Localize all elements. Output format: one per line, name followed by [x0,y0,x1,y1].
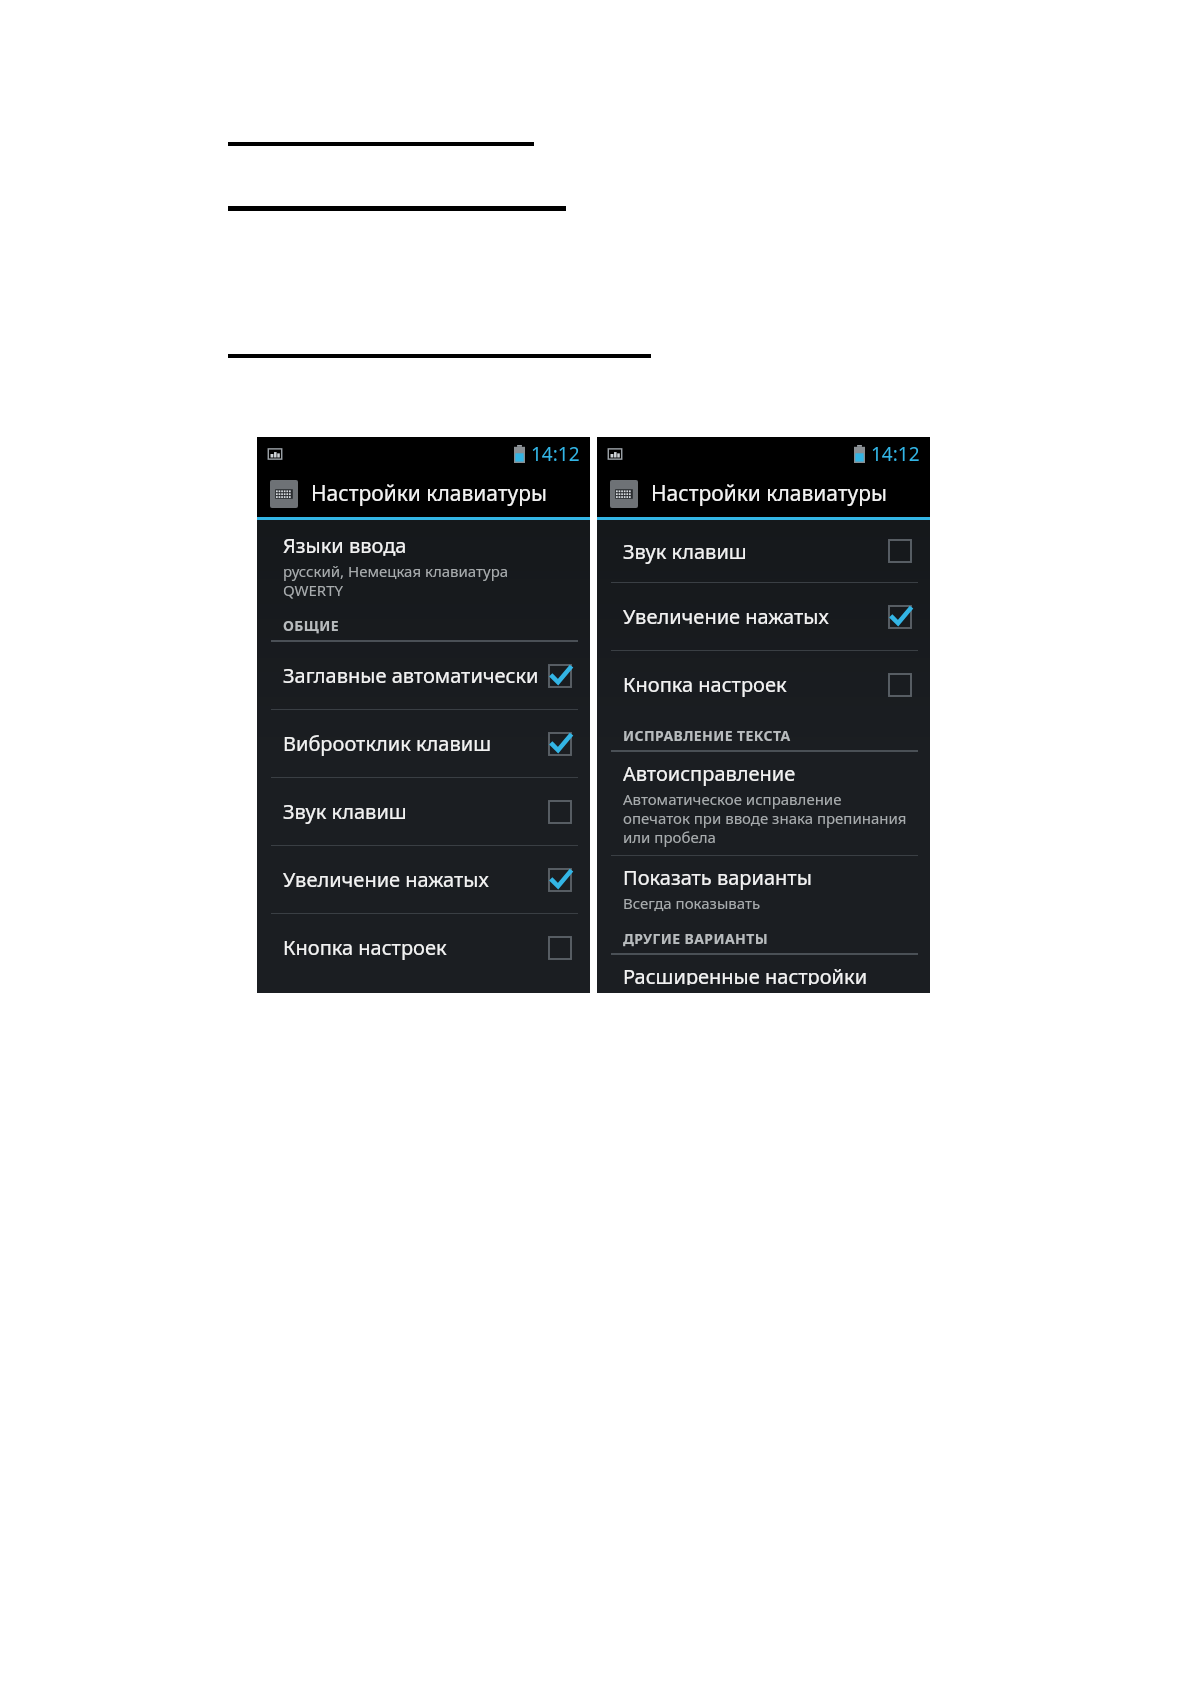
staticText: русский, Немецкая клавиатура QWERTY [283,561,509,600]
staticText: Языки ввода [283,532,407,559]
staticText: Расширенные настройки [623,963,868,985]
button[interactable]: Языки ввода [257,520,590,608]
staticText: Кнопка настроек [623,671,882,698]
button[interactable]: Увеличение нажатых [597,583,930,650]
button[interactable]: Кнопка настроек [597,651,930,718]
button[interactable]: Кнопка настроек [257,914,590,981]
staticText: Виброотклик клавиш [283,730,542,757]
button[interactable]: Расширенные настройки [597,955,930,993]
staticText: Автоисправление [623,760,796,787]
staticText: Кнопка настроек [283,934,542,961]
staticText: ИСПРАВЛЕНИЕ ТЕКСТА [623,726,791,745]
button[interactable]: Звук клавиш [257,778,590,845]
button[interactable]: Звук клавиш [597,520,930,582]
staticText: 14:12 [531,441,580,467]
staticText: Заглавные автоматически [283,662,542,689]
button[interactable]: Настройки клавиатуры Andr... [257,470,590,517]
button[interactable]: Показать варианты исправлений [597,856,930,921]
staticText: Звук клавиш [623,538,882,565]
staticText: Увеличение нажатых [623,603,882,630]
button[interactable]: Настройки клавиатуры Andr... [597,470,930,517]
staticText: ОБЩИЕ [283,616,339,635]
staticText: Показать варианты исправлений [623,864,914,891]
staticText: Автоматическое исправление опечаток при … [623,789,907,847]
button[interactable]: Заглавные автоматически [257,642,590,709]
staticText: Настройки клавиатуры Andr... [311,479,582,508]
staticText: Всегда показывать [623,893,761,913]
button[interactable]: Автоисправление [597,752,930,855]
staticText: Звук клавиш [283,798,542,825]
staticText: Увеличение нажатых [283,866,542,893]
button[interactable]: Увеличение нажатых [257,846,590,913]
staticText: 14:12 [871,441,920,467]
staticText: ДРУГИЕ ВАРИАНТЫ [623,929,768,948]
button[interactable]: Виброотклик клавиш [257,710,590,777]
staticText: Настройки клавиатуры Andr... [651,479,922,508]
